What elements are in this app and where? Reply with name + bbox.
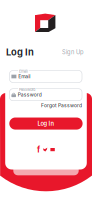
button[interactable]: Sign Up <box>62 48 84 56</box>
staticText: Forgot Password <box>41 102 82 108</box>
staticText: Email <box>19 69 28 74</box>
staticText: Password <box>18 92 42 98</box>
staticText: Password <box>19 87 35 92</box>
staticText: Log In <box>37 120 54 127</box>
button[interactable]: Forgot Password <box>9 102 82 108</box>
staticText: Sign Up <box>62 49 84 55</box>
button[interactable]: Twitter <box>43 148 47 152</box>
button[interactable]: Log In <box>6 46 34 58</box>
button[interactable]: Email <box>50 148 55 151</box>
button[interactable]: Facebook <box>37 147 40 152</box>
staticText: Email <box>18 73 30 79</box>
button[interactable]: Log In <box>9 117 83 130</box>
staticText: f <box>37 145 40 154</box>
staticText: Log In <box>6 46 34 58</box>
